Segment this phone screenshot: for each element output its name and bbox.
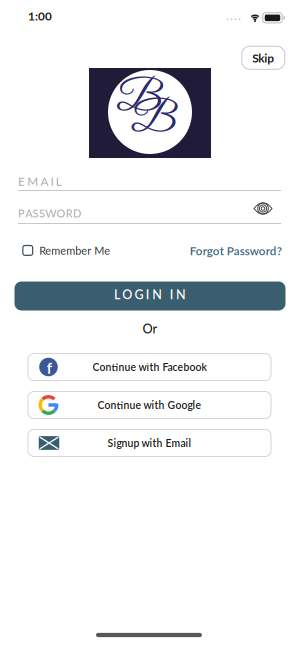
button[interactable]: Forgot Password? <box>190 244 282 258</box>
button[interactable]: Remember Me <box>23 244 110 257</box>
staticText: S <box>33 207 39 220</box>
staticText: Remember Me <box>39 244 110 257</box>
staticText: Signup with Email <box>107 437 191 449</box>
staticText: Skip <box>252 51 274 65</box>
staticText: P <box>18 207 25 220</box>
staticText: Or <box>142 321 157 336</box>
staticText: N <box>176 287 186 302</box>
staticText: Continue with Google <box>97 399 201 411</box>
staticText: L <box>114 287 120 302</box>
staticText: O <box>56 207 65 220</box>
staticText: M <box>27 174 38 188</box>
staticText: I <box>146 287 150 302</box>
staticText: B <box>131 93 176 147</box>
staticText: E <box>18 174 25 188</box>
staticText: I <box>170 287 174 302</box>
staticText: L <box>56 174 62 188</box>
button[interactable]: Continue with Google <box>28 391 271 418</box>
staticText: f <box>47 359 52 377</box>
staticText: S <box>39 207 45 220</box>
staticText: W <box>45 207 56 220</box>
button[interactable]: Signup with Email <box>28 429 271 456</box>
staticText: Continue with Facebook <box>92 361 206 373</box>
staticText: R <box>66 207 73 220</box>
staticText: B <box>116 72 161 126</box>
staticText: G <box>135 287 144 302</box>
button[interactable]: Continue with Facebook <box>28 353 271 380</box>
staticText: I <box>51 174 54 188</box>
button[interactable]: Show password <box>253 201 272 215</box>
button[interactable]: L <box>14 281 285 310</box>
staticText: Forgot Password? <box>190 244 282 258</box>
button[interactable]: Skip <box>242 46 285 69</box>
staticText: 1:00 <box>28 9 52 23</box>
staticText: O <box>122 287 132 302</box>
staticText: A <box>25 207 32 220</box>
staticText: A <box>40 174 48 188</box>
staticText: N <box>152 287 162 302</box>
staticText: D <box>73 207 81 220</box>
